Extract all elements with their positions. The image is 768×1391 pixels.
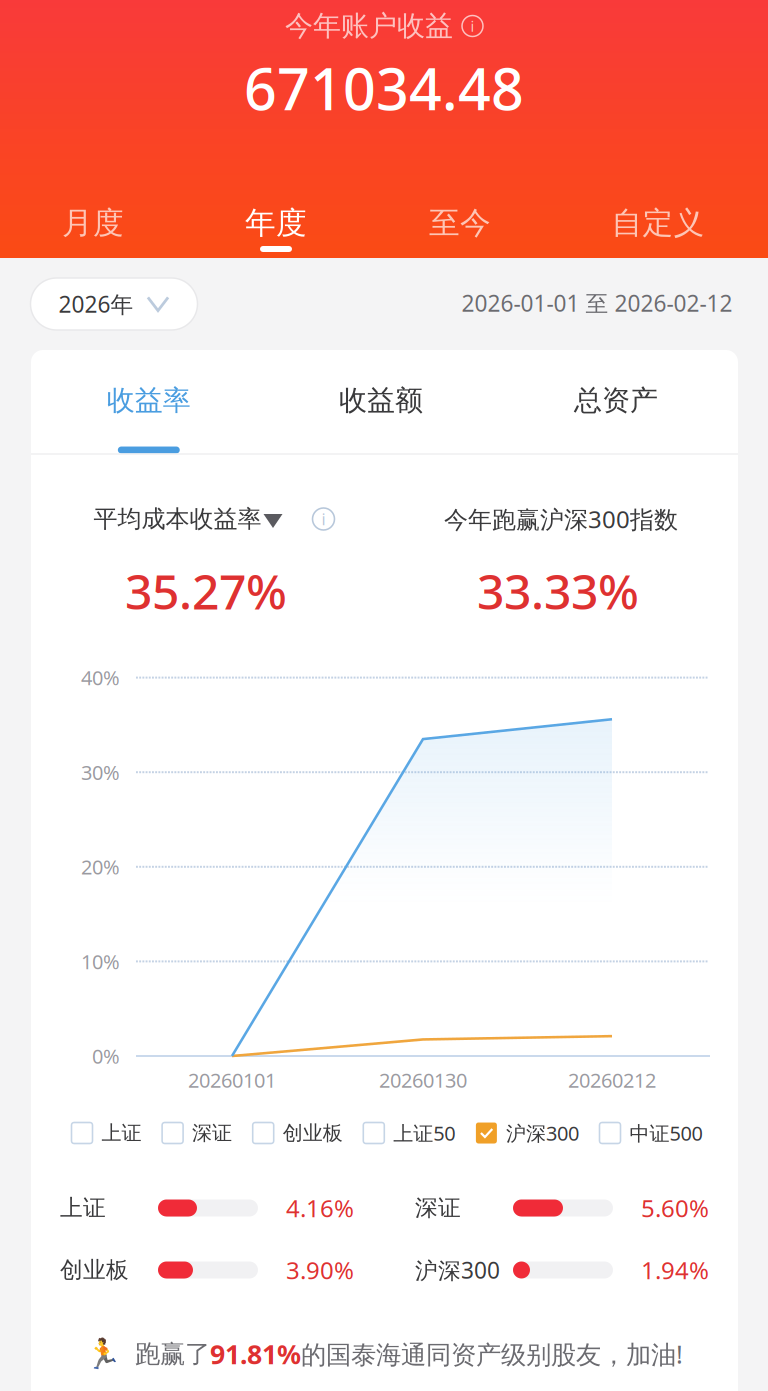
staticText: 🏃 — [85, 1337, 122, 1371]
staticText: 上证 — [60, 1194, 106, 1222]
button[interactable]: 创业板 — [253, 1121, 343, 1145]
staticText: 20260212 — [568, 1067, 656, 1093]
button[interactable]: 至今 — [370, 199, 550, 259]
staticText: 今年账户收益 — [285, 9, 453, 43]
staticText: 4.16% — [286, 1192, 354, 1224]
button[interactable]: 上证50 — [363, 1120, 455, 1146]
button[interactable]: 上证 — [71, 1121, 141, 1145]
button[interactable]: 自定义 — [568, 199, 748, 259]
staticText: 收益额 — [339, 383, 423, 418]
button[interactable]: 沪深300 — [476, 1120, 579, 1146]
staticText: 深证 — [192, 1121, 232, 1145]
staticText: 今年跑赢沪深300指数 — [444, 503, 678, 535]
staticText: 沪深300 — [415, 1255, 500, 1285]
button[interactable]: 平均成本收益率 — [93, 504, 334, 534]
staticText: 20260130 — [379, 1067, 467, 1093]
staticText: 20% — [81, 853, 120, 880]
staticText: 至今 — [429, 204, 491, 242]
staticText: 0% — [92, 1043, 120, 1069]
staticText: 2026-01-01 至 2026-02-12 — [461, 288, 732, 318]
staticText: 平均成本收益率 — [93, 504, 261, 534]
staticText: 总资产 — [574, 383, 658, 418]
button[interactable]: 中证500 — [599, 1120, 702, 1146]
staticText: 2026年 — [58, 289, 133, 319]
staticText: 月度 — [62, 204, 124, 242]
staticText: 年度 — [245, 204, 307, 242]
button[interactable]: 今年账户收益 — [285, 9, 483, 43]
staticText: i — [321, 508, 325, 530]
button[interactable]: 2026年 — [30, 278, 197, 330]
staticText: 跑赢了 — [135, 1338, 210, 1369]
button[interactable]: 收益率 — [31, 381, 267, 457]
staticText: 10% — [81, 948, 120, 975]
button[interactable]: 深证 — [162, 1121, 232, 1145]
staticText: 5.60% — [641, 1192, 709, 1224]
staticText: 创业板 — [60, 1256, 129, 1284]
staticText: 深证 — [415, 1194, 461, 1222]
staticText: 自定义 — [611, 204, 704, 242]
staticText: 中证500 — [629, 1120, 702, 1146]
staticText: 35.27% — [125, 559, 287, 623]
button[interactable]: 年度 — [186, 199, 366, 259]
staticText: 91.81% — [210, 1336, 301, 1372]
staticText: i — [470, 16, 474, 36]
staticText: 上证 — [101, 1121, 141, 1145]
button[interactable]: 总资产 — [498, 381, 734, 457]
staticText: 的国泰海通同资产级别股友，加油! — [301, 1337, 683, 1371]
staticText: 1.94% — [641, 1254, 709, 1286]
staticText: 3.90% — [286, 1254, 354, 1286]
staticText: 671034.48 — [244, 50, 524, 126]
staticText: 收益率 — [107, 383, 191, 418]
staticText: 创业板 — [283, 1121, 343, 1145]
staticText: 30% — [81, 759, 120, 785]
staticText: 33.33% — [477, 559, 639, 623]
button[interactable]: 月度 — [3, 199, 183, 259]
button[interactable]: 收益额 — [263, 381, 499, 457]
staticText: 20260101 — [188, 1067, 276, 1093]
staticText: 上证50 — [393, 1120, 455, 1146]
staticText: 沪深300 — [506, 1120, 579, 1146]
staticText: 40% — [81, 664, 120, 691]
